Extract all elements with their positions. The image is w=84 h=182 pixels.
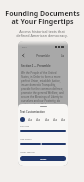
staticText: We the People of the United States, in O… xyxy=(21,71,65,107)
button[interactable]: Aa xyxy=(28,117,33,122)
staticText: Aa xyxy=(53,117,58,122)
button[interactable]: Aa xyxy=(61,117,66,122)
staticText: Apply xyxy=(40,157,47,160)
button[interactable]: Text settings xyxy=(60,53,65,58)
button[interactable]: Aa xyxy=(45,117,50,122)
staticText: Aa xyxy=(61,117,66,122)
button[interactable]: Apply xyxy=(20,156,66,161)
button[interactable]: Aa xyxy=(53,117,58,122)
staticText: Aa xyxy=(36,117,41,122)
staticText: Aa xyxy=(61,54,65,58)
button[interactable] xyxy=(20,143,66,145)
staticText: The Congress shall assemble at least onc… xyxy=(21,109,65,121)
staticText: Access historical texts that defined Ame… xyxy=(16,29,68,39)
staticText: Aa xyxy=(28,117,33,122)
button[interactable]: Theme colour xyxy=(20,117,25,122)
button[interactable]: Back xyxy=(21,53,26,58)
staticText: Line height xyxy=(20,138,32,141)
staticText: 9:41 xyxy=(22,45,27,48)
staticText: Text Customization xyxy=(20,110,45,114)
staticText: Font size xyxy=(20,125,30,128)
staticText: Letter spacing xyxy=(20,151,35,154)
staticText: Aa xyxy=(45,117,50,122)
staticText: Founding Documents at Your Fingertips xyxy=(5,9,80,26)
button[interactable] xyxy=(20,130,66,132)
staticText: Section I — Preamble xyxy=(21,64,51,68)
button[interactable]: Aa xyxy=(36,117,41,122)
staticText: Preamble xyxy=(26,54,60,58)
